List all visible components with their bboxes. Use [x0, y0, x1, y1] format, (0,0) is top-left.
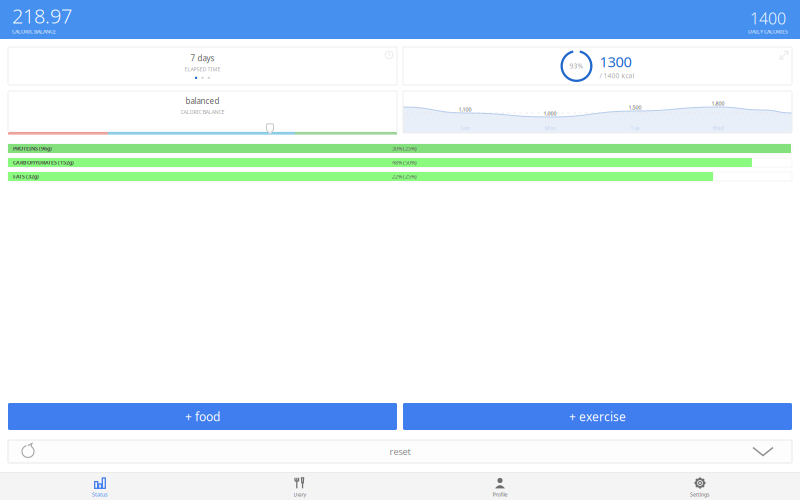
button[interactable]: Expand chart — [776, 47, 792, 63]
button[interactable]: reset — [8, 440, 792, 463]
staticText: CALORIC BALANCE — [180, 108, 224, 115]
button[interactable]: Diary — [200, 472, 400, 500]
staticText: Tue — [630, 124, 639, 132]
button[interactable]: Settings — [600, 472, 800, 500]
staticText: Profile — [492, 491, 507, 498]
staticText: reset — [389, 445, 410, 458]
button[interactable]: Elapsed time info — [381, 47, 397, 63]
button[interactable]: Status — [0, 472, 200, 500]
staticText: Status — [92, 491, 108, 498]
staticText: 93% — [569, 62, 583, 70]
staticText: 218.97 — [12, 2, 72, 29]
staticText: 1,100 — [458, 106, 471, 113]
staticText: 22% (25%) — [392, 173, 417, 180]
staticText: DAILY CALORIES — [748, 28, 788, 35]
button[interactable]: Profile — [400, 472, 600, 500]
staticText: 7 days — [190, 53, 214, 63]
staticText: 1,000 — [543, 110, 556, 117]
staticText: / 1400 kcal — [599, 71, 634, 80]
staticText: Sun — [460, 124, 469, 132]
staticText: Diary — [293, 491, 306, 498]
staticText: 48% (50%) — [392, 159, 417, 166]
staticText: PROTEINS (96g) — [13, 145, 52, 152]
staticText: FATS (32g) — [13, 173, 39, 180]
staticText: balanced — [185, 96, 219, 106]
staticText: CALORIC BALANCE — [12, 28, 56, 35]
button[interactable]: + exercise — [403, 403, 792, 430]
staticText: 30% (25%) — [392, 145, 417, 152]
staticText: ELAPSED TIME — [184, 66, 220, 73]
staticText: 1,500 — [628, 104, 641, 111]
staticText: CARBOHYDRATES (152g) — [13, 159, 74, 166]
staticText: Mon — [544, 124, 555, 132]
staticText: 1400 — [750, 8, 786, 29]
staticText: 1,800 — [711, 100, 724, 107]
staticText: + food — [185, 408, 220, 424]
staticText: Wed — [712, 124, 723, 132]
button[interactable]: + food — [8, 403, 397, 430]
staticText: Settings — [690, 491, 710, 498]
staticText: 1300 — [599, 52, 631, 71]
staticText: + exercise — [569, 408, 626, 424]
